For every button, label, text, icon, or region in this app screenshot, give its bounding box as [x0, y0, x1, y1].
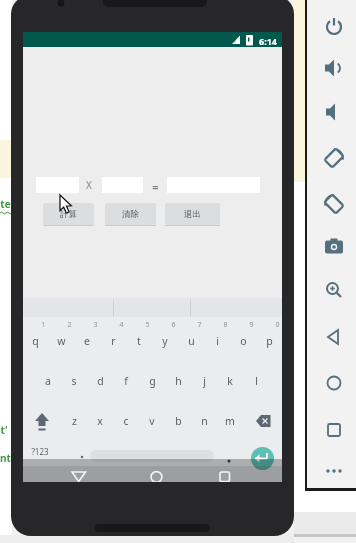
- staticText: l: [255, 374, 258, 388]
- staticText: p: [266, 334, 273, 348]
- staticText: w: [57, 334, 66, 348]
- staticText: k: [227, 374, 233, 388]
- staticText: 2: [67, 320, 72, 330]
- staticText: c: [123, 414, 129, 428]
- staticText: 0: [275, 320, 280, 330]
- staticText: n: [201, 414, 208, 428]
- button[interactable]: 退出: [165, 203, 220, 225]
- staticText: nt: [0, 451, 11, 465]
- staticText: 8: [223, 320, 228, 330]
- staticText: z: [72, 414, 77, 428]
- staticText: 計算: [60, 209, 77, 220]
- staticText: h: [175, 374, 182, 388]
- staticText: d: [97, 374, 104, 388]
- staticText: s: [71, 374, 77, 388]
- staticText: i: [216, 334, 219, 348]
- button[interactable]: 清除: [105, 203, 156, 225]
- staticText: 9: [249, 320, 254, 330]
- staticText: 1: [41, 320, 46, 330]
- button[interactable]: [251, 447, 274, 470]
- staticText: a: [45, 374, 51, 388]
- staticText: 3: [93, 320, 98, 330]
- staticText: X: [86, 178, 92, 192]
- staticText: =: [152, 179, 159, 194]
- button[interactable]: [90, 450, 214, 462]
- staticText: 7: [197, 320, 202, 330]
- staticText: 6:14: [259, 35, 277, 47]
- staticText: x: [97, 414, 103, 428]
- staticText: t': [0, 423, 8, 437]
- staticText: g: [149, 374, 156, 388]
- staticText: v: [149, 414, 155, 428]
- staticText: ?123: [31, 446, 49, 457]
- staticText: u: [188, 334, 195, 348]
- staticText: 清除: [122, 209, 139, 220]
- staticText: j: [203, 374, 206, 388]
- staticText: 5: [145, 320, 150, 330]
- button[interactable]: 計算: [43, 203, 94, 225]
- staticText: 退出: [184, 209, 201, 220]
- staticText: o: [240, 334, 247, 348]
- staticText: 6: [171, 320, 176, 330]
- staticText: e: [84, 334, 90, 348]
- staticText: q: [32, 334, 39, 348]
- staticText: t: [137, 334, 141, 348]
- staticText: f: [124, 374, 128, 388]
- staticText: 4: [119, 320, 124, 330]
- staticText: te: [0, 197, 11, 211]
- staticText: m: [225, 414, 235, 428]
- staticText: y: [162, 334, 168, 348]
- staticText: b: [175, 414, 182, 428]
- staticText: r: [111, 334, 116, 348]
